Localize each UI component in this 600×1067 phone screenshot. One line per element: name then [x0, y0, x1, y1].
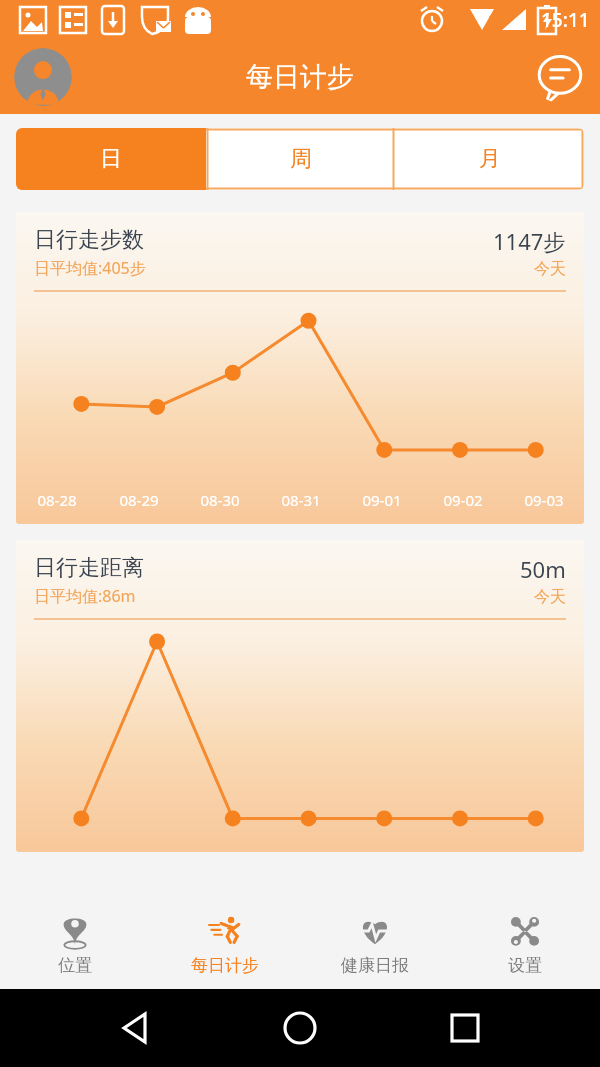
staticText: 今天: [534, 259, 566, 279]
staticText: 日: [100, 145, 122, 173]
staticText: 08-28: [37, 490, 77, 510]
staticText: 月: [479, 145, 501, 173]
staticText: 日平均值:86m: [34, 585, 136, 607]
button[interactable]: 位置: [0, 899, 150, 989]
staticText: 09-02: [443, 490, 483, 510]
staticText: 周: [290, 145, 312, 173]
staticText: 50m: [520, 554, 566, 584]
button[interactable]: 日行走距离: [16, 540, 584, 852]
staticText: 09-03: [524, 490, 564, 510]
staticText: 08-29: [119, 490, 159, 510]
button[interactable]: 设置: [450, 899, 600, 989]
staticText: 日平均值:405步: [34, 257, 146, 279]
staticText: 每日计步: [191, 955, 259, 976]
staticText: 位置: [58, 955, 92, 976]
staticText: 1147步: [493, 226, 566, 256]
button[interactable]: 日: [16, 128, 206, 190]
button[interactable]: Messages: [534, 51, 586, 103]
staticText: 每日计步: [246, 60, 354, 94]
staticText: 设置: [508, 955, 542, 976]
staticText: 15:11: [541, 7, 590, 33]
button[interactable]: Profile: [14, 48, 72, 106]
staticText: 日行走步数: [34, 226, 144, 254]
button[interactable]: 健康日报: [300, 899, 450, 989]
button[interactable]: 每日计步: [150, 899, 300, 989]
staticText: 日行走距离: [34, 554, 144, 582]
staticText: 08-30: [200, 490, 240, 510]
button[interactable]: 周: [206, 128, 395, 190]
staticText: 健康日报: [341, 955, 409, 976]
staticText: 09-01: [362, 490, 402, 510]
button[interactable]: 日行走步数: [16, 212, 584, 524]
staticText: 今天: [534, 587, 566, 607]
staticText: 08-31: [281, 490, 321, 510]
button[interactable]: 月: [395, 128, 584, 190]
